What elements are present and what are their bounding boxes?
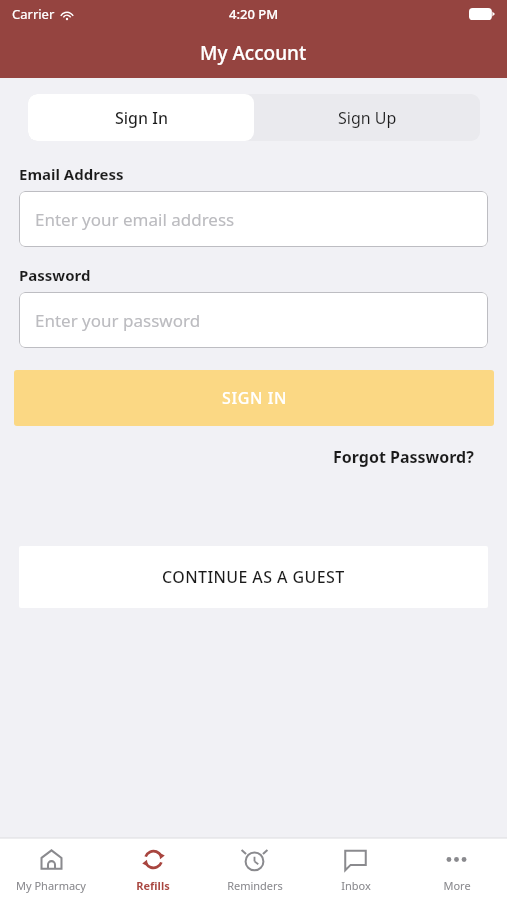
staticText: Sign Up [338, 107, 397, 129]
staticText: 4:20 PM [229, 5, 279, 23]
staticText: Sign In [115, 107, 168, 129]
button[interactable]: More [406, 838, 507, 900]
staticText: Password [19, 265, 91, 285]
staticText: My Account [200, 40, 307, 66]
staticText: Carrier [12, 5, 55, 23]
staticText: CONTINUE AS A GUEST [162, 566, 345, 588]
staticText: Enter your password [35, 309, 201, 332]
staticText: My Pharmacy [16, 878, 86, 893]
button[interactable]: Sign Up [254, 94, 480, 141]
button[interactable]: CONTINUE AS A GUEST [19, 546, 488, 608]
staticText: Email Address [19, 164, 124, 184]
button[interactable]: Sign In [28, 94, 254, 141]
button[interactable]: SIGN IN [14, 370, 494, 426]
button[interactable]: Refills [102, 838, 204, 900]
button[interactable]: Enter your password [19, 292, 488, 348]
staticText: Refills [136, 878, 170, 893]
staticText: More [443, 878, 471, 893]
button[interactable]: My Pharmacy [0, 838, 102, 900]
staticText: Reminders [227, 878, 283, 893]
staticText: Forgot Password? [333, 446, 474, 468]
staticText: Inbox [341, 878, 371, 893]
button[interactable]: Enter your email address [19, 191, 488, 247]
staticText: SIGN IN [222, 387, 287, 409]
button[interactable]: Inbox [305, 838, 406, 900]
staticText: Enter your email address [35, 208, 235, 231]
button[interactable]: Forgot Password? [333, 446, 474, 468]
button[interactable]: Reminders [204, 838, 305, 900]
